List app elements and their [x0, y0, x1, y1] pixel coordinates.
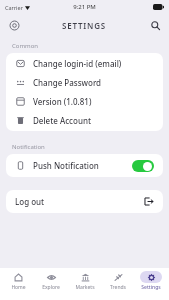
button[interactable]: Change Password	[6, 73, 163, 92]
staticText: Settings	[141, 284, 161, 291]
button[interactable]: Profile settings	[6, 17, 22, 33]
staticText: Home	[11, 284, 26, 291]
button[interactable]: Markets	[70, 271, 100, 291]
button[interactable]: Settings	[136, 271, 166, 291]
button[interactable]: Change login-id (email)	[6, 54, 163, 73]
button[interactable]: Trends	[103, 271, 133, 291]
button[interactable]: Search	[147, 17, 163, 33]
staticText: SETTINGS	[62, 20, 107, 31]
button[interactable]: Version (1.0.81)	[6, 92, 163, 111]
staticText: Markets	[75, 284, 95, 291]
staticText: Push Notification	[33, 160, 99, 171]
button[interactable]: Log out	[6, 191, 163, 212]
button[interactable]: Delete Account	[6, 111, 163, 130]
staticText: Version (1.0.81)	[33, 96, 92, 107]
staticText: Common	[12, 42, 38, 50]
staticText: Delete Account	[33, 115, 92, 126]
button[interactable]: Push Notification	[6, 155, 163, 176]
staticText: Carrier	[5, 4, 23, 11]
staticText: Notification	[12, 143, 45, 151]
staticText: Explore	[42, 284, 60, 291]
staticText: Trends	[110, 284, 126, 291]
other: Push Notification toggle	[132, 160, 154, 172]
staticText: Change login-id (email)	[33, 58, 122, 69]
button[interactable]: Home	[3, 271, 33, 291]
staticText: Change Password	[33, 77, 102, 88]
button[interactable]: Explore	[36, 271, 66, 291]
staticText: 9:21 PM	[73, 3, 96, 11]
staticText: Log out	[15, 196, 45, 207]
